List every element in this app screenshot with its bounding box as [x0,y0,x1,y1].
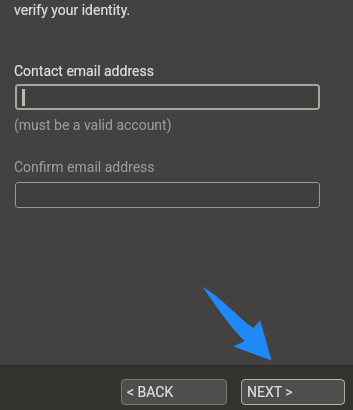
staticText: verify your identity. [14,2,131,18]
button[interactable] [15,182,320,208]
staticText: < BACK [127,384,174,400]
staticText: Contact email address [14,63,154,79]
staticText: Confirm email address [14,159,155,175]
button[interactable] [15,84,320,110]
staticText: (must be a valid account) [14,117,172,133]
button[interactable]: < BACK [121,379,227,405]
button[interactable]: NEXT > [241,379,345,405]
staticText: NEXT > [247,384,293,400]
